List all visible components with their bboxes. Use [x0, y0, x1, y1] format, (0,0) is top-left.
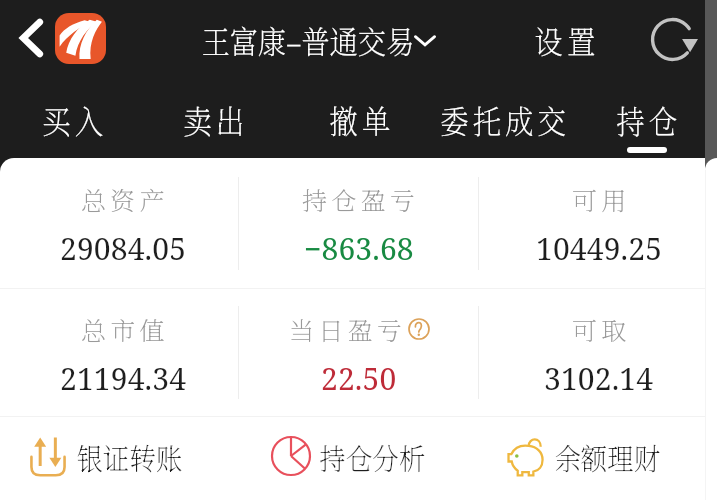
staticText: 王富康–普通交易	[201, 17, 414, 63]
staticText: 设置	[534, 17, 600, 63]
staticText: −863.68	[304, 228, 414, 269]
button[interactable]: 银证转账	[25, 430, 191, 482]
staticText: 总资产	[81, 181, 169, 217]
button[interactable]: 卖出	[169, 89, 259, 158]
staticText: 买入	[42, 96, 108, 143]
button[interactable]: App logo	[55, 13, 106, 64]
staticText: 余额理财	[554, 435, 660, 478]
staticText: 3102.14	[544, 358, 654, 399]
staticText: 总市值	[81, 311, 169, 347]
button[interactable]: 设置	[530, 12, 605, 68]
staticText: 银证转账	[76, 435, 182, 478]
staticText: 可用	[572, 181, 631, 217]
button[interactable]: 余额理财	[503, 430, 669, 482]
staticText: 当日盈亏	[289, 311, 407, 347]
staticText: 持仓分析	[319, 435, 425, 478]
button[interactable]: 当日盈亏	[228, 311, 488, 399]
button[interactable]: 委托成交	[428, 89, 576, 158]
staticText: 持仓盈亏	[302, 181, 420, 217]
staticText: 29084.05	[60, 228, 187, 269]
staticText: 22.50	[321, 358, 397, 399]
staticText: 可取	[572, 311, 631, 347]
button[interactable]: 持仓盈亏	[228, 181, 488, 269]
button[interactable]: 总市值	[0, 311, 252, 399]
button[interactable]: Back	[3, 10, 59, 66]
staticText: 委托成交	[440, 96, 568, 143]
button[interactable]: 总资产	[0, 181, 252, 269]
button[interactable]: 持仓分析	[268, 430, 434, 482]
staticText: 撤单	[329, 96, 395, 143]
staticText: 10449.25	[536, 228, 663, 269]
staticText: 21194.34	[60, 358, 187, 399]
staticText: 持仓	[616, 96, 682, 143]
button[interactable]: 王富康–普通交易	[187, 12, 453, 68]
button[interactable]: 撤单	[315, 89, 405, 158]
button[interactable]: 买入	[28, 89, 118, 158]
staticText: 卖出	[183, 96, 249, 143]
button[interactable]: Refresh	[646, 13, 698, 65]
button[interactable]: 持仓	[602, 89, 692, 158]
button[interactable]: 可取	[468, 311, 705, 399]
button[interactable]: 可用	[468, 181, 705, 269]
